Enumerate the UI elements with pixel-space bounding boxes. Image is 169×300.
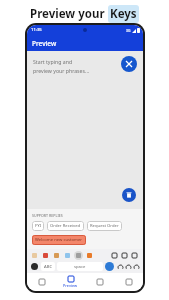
staticText: Start typing and — [33, 58, 73, 65]
button[interactable]: Search — [120, 251, 129, 260]
button[interactable]: Emoji 3 — [63, 251, 72, 260]
staticText: ABC — [44, 264, 53, 270]
staticText: 3G — [126, 28, 131, 33]
button[interactable]: Backspace — [130, 251, 139, 260]
button[interactable]: Enter — [132, 263, 140, 271]
staticText: preview your phrases... — [33, 67, 90, 74]
button[interactable]: Keyboard — [27, 273, 56, 291]
button[interactable]: Language — [30, 262, 39, 271]
staticText: space — [74, 264, 86, 270]
button[interactable]: FYI — [32, 221, 44, 231]
staticText: Request Order — [90, 223, 119, 229]
button[interactable]: Undo — [124, 263, 132, 271]
button[interactable]: ABC — [41, 262, 55, 271]
staticText: Order Received — [50, 223, 81, 229]
button[interactable]: Emoji 4 — [74, 251, 83, 260]
staticText: Preview — [63, 283, 78, 288]
button[interactable]: Welcome new customer — [32, 235, 86, 245]
staticText: Preview your — [30, 6, 108, 22]
button[interactable]: Copy — [110, 251, 119, 260]
button[interactable]: Request Order — [87, 221, 122, 231]
staticText: Keys — [110, 6, 137, 22]
button[interactable]: Delete — [122, 188, 136, 202]
button[interactable]: Preview — [56, 273, 85, 291]
staticText: FYI — [35, 223, 41, 229]
button[interactable]: Close — [121, 56, 137, 72]
button[interactable]: Globe — [105, 262, 114, 271]
button[interactable]: Order Received — [47, 221, 84, 231]
button[interactable]: Redo — [116, 263, 124, 271]
button[interactable]: Emoji 0 — [30, 251, 39, 260]
button[interactable]: Settings — [114, 273, 143, 291]
button[interactable]: List — [85, 273, 114, 291]
button[interactable]: Emoji 1 — [41, 251, 50, 260]
staticText: Welcome new customer — [35, 237, 83, 243]
staticText: Preview — [32, 39, 57, 48]
button[interactable]: Emoji 2 — [52, 251, 61, 260]
staticText: SUPPORT REPLIES — [32, 213, 63, 218]
staticText: 11:35 — [31, 27, 42, 33]
button[interactable]: space — [57, 262, 103, 271]
button[interactable]: Emoji 5 — [85, 251, 94, 260]
